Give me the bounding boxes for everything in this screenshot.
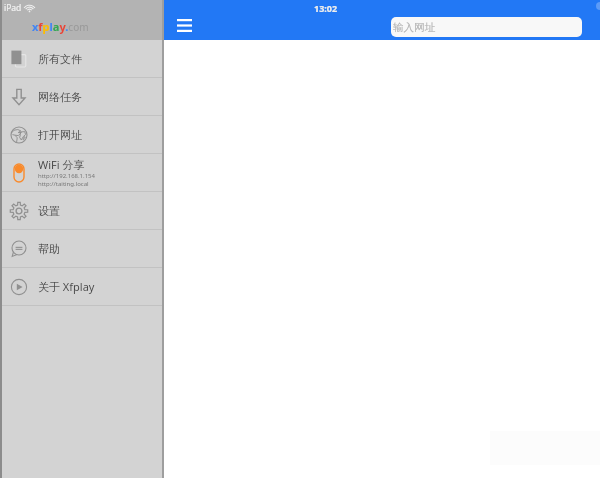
staticText: WiFi 分享: [38, 157, 85, 172]
button[interactable]: 设置: [0, 192, 164, 229]
button[interactable]: 打开网址: [0, 116, 164, 153]
button[interactable]: 网络任务: [0, 78, 164, 115]
button[interactable]: 所有文件: [0, 40, 164, 77]
staticText: 帮助: [38, 242, 60, 256]
staticText: iPad: [4, 2, 22, 14]
staticText: 13:02: [314, 2, 338, 14]
staticText: http://taiting.local: [38, 180, 89, 188]
staticText: 网络任务: [38, 90, 82, 104]
staticText: 输入网址: [393, 21, 435, 34]
staticText: 所有文件: [38, 52, 82, 66]
button[interactable]: WiFi 分享: [0, 154, 164, 191]
staticText: http://192.168.1.154: [38, 172, 95, 180]
staticText: 设置: [38, 204, 60, 218]
staticText: 关于 Xfplay: [38, 279, 95, 294]
staticText: xfplay.com: [32, 19, 89, 34]
button[interactable]: 关于 Xfplay: [0, 268, 164, 305]
button[interactable]: 帮助: [0, 230, 164, 267]
staticText: 打开网址: [38, 128, 82, 142]
button[interactable]: 输入网址: [391, 17, 582, 37]
button[interactable]: Open navigation menu: [171, 11, 200, 40]
